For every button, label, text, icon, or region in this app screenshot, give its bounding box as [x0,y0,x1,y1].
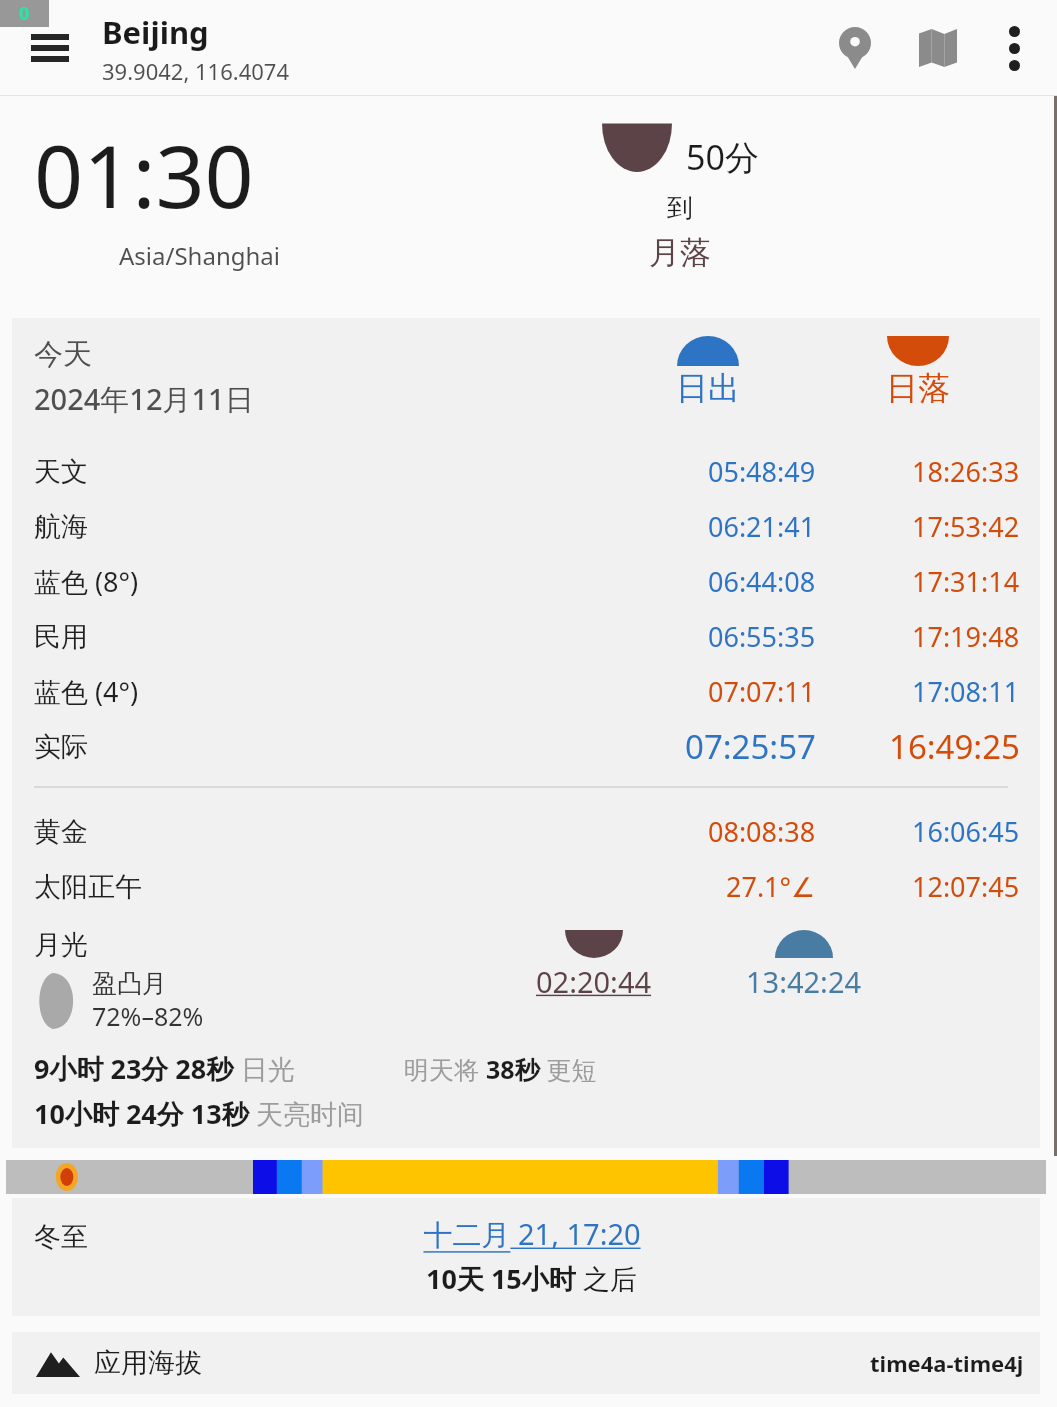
staticText: 18:26:33 [912,453,1020,490]
staticText: 应用海拔 [94,1346,202,1380]
staticText: 2024年12月11日 [34,379,254,419]
staticText: 08:08:38 [708,813,816,850]
staticText: 之后 [576,1260,638,1297]
staticText: 10天 15小时 [426,1260,576,1297]
staticText: 06:55:35 [708,618,816,655]
staticText: 日光 [241,1053,295,1087]
staticText: 天文 [34,455,600,489]
staticText: 07:25:57 [685,724,816,769]
staticText: 17:08:11 [912,673,1020,710]
staticText: 蓝色 (8°) [34,563,600,600]
staticText: 17:19:48 [912,618,1020,655]
staticText: 日出 [676,368,740,408]
staticText: 05:48:49 [708,453,816,490]
staticText: 39.9042, 116.4074 [102,56,290,86]
staticText: 16:49:25 [889,724,1020,769]
staticText: 12:07:45 [912,868,1020,905]
staticText: 27.1°∠ [726,868,816,905]
staticText: 0 [19,1,30,26]
staticText: 50分 [686,134,759,180]
staticText: 17:53:42 [912,508,1020,545]
staticText: 月光 [34,928,88,962]
staticText: 01:30 [34,116,254,233]
button[interactable]: More options [981,15,1047,81]
staticText: 38秒 [486,1052,540,1086]
staticText: 航海 [34,510,600,544]
staticText: 72%–82% [92,999,204,1033]
staticText: 17:31:14 [912,563,1020,600]
staticText: 明天将 [404,1052,486,1086]
staticText: 到 [667,192,693,225]
button[interactable]: Open navigation drawer [8,6,92,90]
staticText: 黄金 [34,815,600,849]
staticText: 06:21:41 [708,508,816,545]
staticText: 10小时 24分 13秒 [34,1095,256,1132]
staticText: time4a-time4j [870,1348,1024,1378]
staticText: 月落 [649,233,711,272]
staticText: 06:44:08 [708,563,816,600]
staticText: 天亮时间 [256,1098,364,1132]
staticText: 实际 [34,730,600,764]
staticText: 07:07:11 [708,673,816,710]
staticText: Beijing [102,11,209,53]
staticText: 蓝色 (4°) [34,673,600,710]
staticText: 盈凸月 [92,968,167,999]
button[interactable]: 十二月 21, 17:20 [423,1214,641,1254]
staticText: 日落 [886,368,950,408]
button[interactable]: Location [815,8,895,88]
staticText: 冬至 [34,1220,88,1254]
staticText: Asia/Shanghai [119,239,280,272]
staticText: 今天 [34,336,92,373]
staticText: 13:42:24 [746,962,862,1001]
staticText: 太阳正午 [34,870,600,904]
staticText: 02:20:44 [536,962,652,1001]
staticText: 16:06:45 [912,813,1020,850]
button[interactable]: Map [895,5,981,91]
staticText: 民用 [34,620,600,654]
staticText: 9小时 23分 28秒 [34,1050,241,1087]
button[interactable]: 应用海拔 [12,1332,1040,1394]
staticText: 更短 [540,1052,597,1086]
staticText: 十二月 21, 17:20 [423,1214,641,1254]
